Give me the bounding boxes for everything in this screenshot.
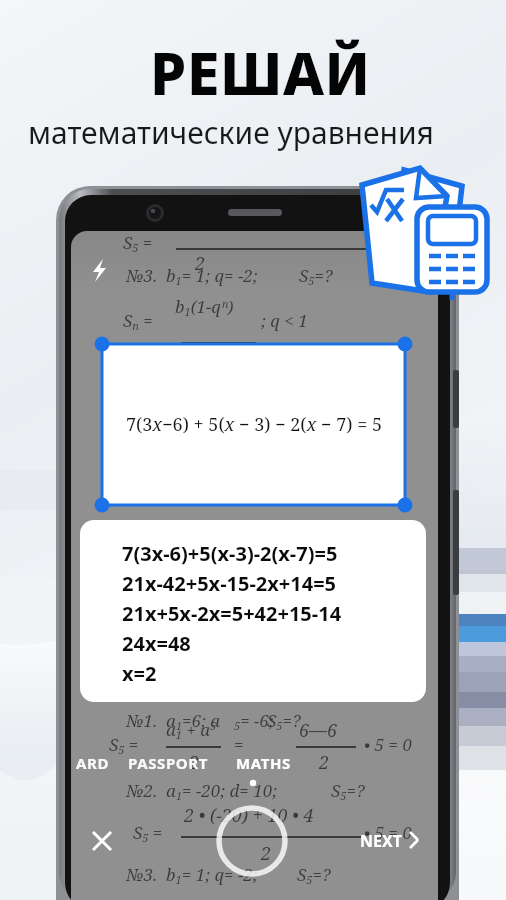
staticText: ; q < 1 [261,309,308,332]
staticText: S5 = [109,733,139,757]
staticText: PASSPORT [128,753,208,773]
staticText: x=2 [122,660,157,687]
staticText: • 5 = 0 [364,733,412,756]
staticText: 2 [189,750,200,775]
staticText: 7(3x−6) + 5(x − 3) − 2(x − 7) = 5 [126,412,382,437]
button[interactable]: PASSPORT [122,749,202,769]
staticText: NEXT [360,830,402,852]
staticText: 24x=48 [122,630,191,657]
staticText: 2 [195,251,206,276]
staticText: S5=? [267,709,301,733]
staticText: 2 [261,841,272,866]
button[interactable]: 7(3x-6)+5(x-3)-2(x-7)=5 [80,520,426,702]
staticText: №3. b1= 1; q= -2; [126,863,262,887]
staticText: a1 + a [166,718,211,742]
staticText: = [234,733,244,756]
staticText: 7(3x-6)+5(x-3)-2(x-7)=5 [122,540,338,567]
button[interactable]: Flash [81,251,119,289]
button[interactable]: 7(3x−6) + 5(x − 3) − 2(x − 7) = 5 [102,344,405,505]
staticText: S5=? [299,264,333,288]
staticText: №1. a1=6; a [126,709,221,733]
staticText: №3. b1= 1; q= -2; [126,264,262,288]
staticText: №2. a1= -20; d= 10; [126,779,282,803]
staticText: 5= -6; [234,709,279,733]
staticText: математические уравнения [28,112,434,153]
staticText: 2 [319,750,330,775]
staticText: S5=? [297,863,331,887]
staticText: • 5 = 0 [364,821,412,844]
staticText: S5=? [331,779,365,803]
staticText: 21x-42+5x-15-2x+14=5 [122,570,337,597]
button[interactable]: Close [80,819,124,863]
button[interactable]: MATHS [230,749,285,769]
staticText: Sn = [123,309,153,333]
staticText: • 5 = [369,231,403,254]
staticText: 21x+5x-2x=5+42+15-14 [122,600,342,627]
staticText: MATHS [236,753,291,773]
staticText: 2 • (−20) + 10 • 4 [184,803,314,828]
staticText: b1(1−qⁿ) [175,295,234,319]
button[interactable]: NEXT [360,823,428,857]
staticText: S5 = [123,231,153,255]
staticText: S5 = [133,821,163,845]
staticText: 6—6 [299,718,338,743]
button[interactable]: ARD [71,749,104,769]
staticText: ARD [76,753,110,773]
staticText: 5 [210,718,217,733]
staticText: РЕШАЙ [150,33,371,112]
